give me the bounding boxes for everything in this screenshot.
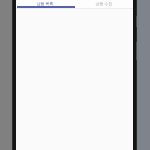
staticText: 상품 수정 <box>95 1 113 6</box>
staticText: 상품 목록 <box>36 1 54 6</box>
button[interactable]: 상품 목록 <box>16 0 74 8</box>
button[interactable]: 상품 수정 <box>74 0 133 8</box>
